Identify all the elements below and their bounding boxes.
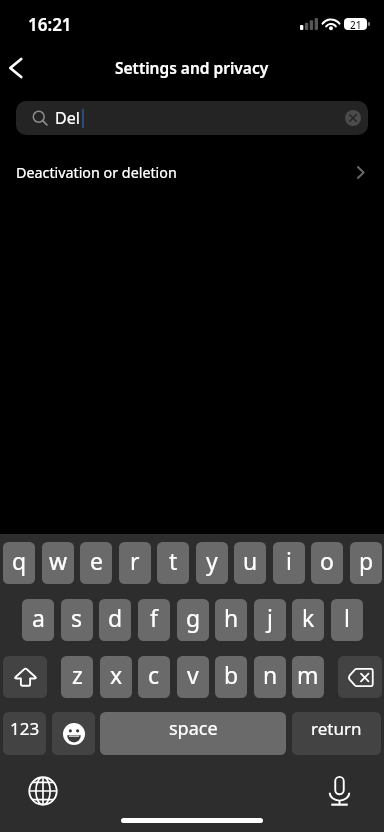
staticText: 16:21	[28, 13, 72, 36]
staticText: w	[49, 545, 68, 576]
staticText: a	[32, 602, 45, 633]
button[interactable]: Change keyboard language	[25, 773, 61, 809]
button[interactable]: j	[254, 599, 286, 641]
button[interactable]: p	[350, 542, 382, 584]
button[interactable]: s	[61, 599, 93, 641]
button[interactable]: l	[331, 599, 363, 641]
button[interactable]: w	[42, 542, 74, 584]
button[interactable]: n	[254, 656, 286, 698]
staticText: e	[90, 545, 103, 576]
staticText: r	[130, 545, 140, 576]
button[interactable]: q	[3, 542, 35, 584]
staticText: 123	[10, 717, 40, 740]
staticText: 21	[350, 18, 362, 30]
staticText: m	[297, 659, 319, 690]
staticText: j	[267, 602, 273, 633]
button[interactable]: return	[292, 712, 381, 755]
button[interactable]	[52, 712, 95, 755]
button[interactable]: b	[215, 656, 247, 698]
button[interactable]: 123	[3, 712, 46, 755]
staticText: o	[320, 545, 334, 576]
button[interactable]	[3, 656, 47, 698]
staticText: u	[243, 545, 258, 576]
button[interactable]: f	[138, 599, 170, 641]
staticText: i	[286, 545, 292, 576]
button[interactable]: space	[100, 712, 286, 755]
staticText: q	[12, 545, 27, 576]
button[interactable]: Dictation	[321, 773, 357, 809]
staticText: f	[150, 602, 158, 633]
button[interactable]: z	[61, 656, 93, 698]
staticText: k	[302, 602, 315, 633]
button[interactable]: d	[99, 599, 131, 641]
button[interactable]: t	[157, 542, 189, 584]
staticText: Settings and privacy	[115, 57, 269, 78]
button[interactable]: x	[100, 656, 132, 698]
staticText: y	[206, 545, 218, 576]
button[interactable]: g	[177, 599, 209, 641]
button[interactable]: v	[177, 656, 209, 698]
button[interactable]: h	[215, 599, 247, 641]
button[interactable]: i	[273, 542, 305, 584]
button[interactable]: y	[196, 542, 228, 584]
staticText: v	[187, 659, 199, 690]
button[interactable]: a	[22, 599, 54, 641]
staticText: Del	[55, 107, 80, 129]
staticText: Deactivation or deletion	[16, 163, 177, 182]
staticText: space	[169, 716, 218, 741]
staticText: s	[71, 602, 83, 633]
staticText: n	[263, 659, 278, 690]
button[interactable]: c	[138, 656, 170, 698]
button[interactable]: m	[292, 656, 324, 698]
button[interactable]	[338, 656, 382, 698]
button[interactable]: o	[311, 542, 343, 584]
staticText: d	[108, 602, 123, 633]
staticText: c	[148, 659, 160, 690]
staticText: b	[224, 659, 239, 690]
button[interactable]: Deactivation or deletion	[0, 135, 384, 210]
button[interactable]: u	[234, 542, 266, 584]
staticText: t	[169, 545, 178, 576]
staticText: return	[311, 717, 362, 740]
staticText: p	[359, 545, 374, 576]
button[interactable]: Back	[0, 52, 31, 83]
staticText: x	[110, 659, 123, 690]
button[interactable]: Del	[16, 101, 368, 135]
button[interactable]: k	[292, 599, 324, 641]
staticText: z	[72, 659, 83, 690]
staticText: l	[344, 602, 350, 633]
staticText: h	[224, 602, 239, 633]
staticText: g	[186, 602, 201, 633]
button[interactable]: e	[80, 542, 112, 584]
button[interactable]: Clear search	[345, 110, 361, 126]
button[interactable]: r	[119, 542, 151, 584]
